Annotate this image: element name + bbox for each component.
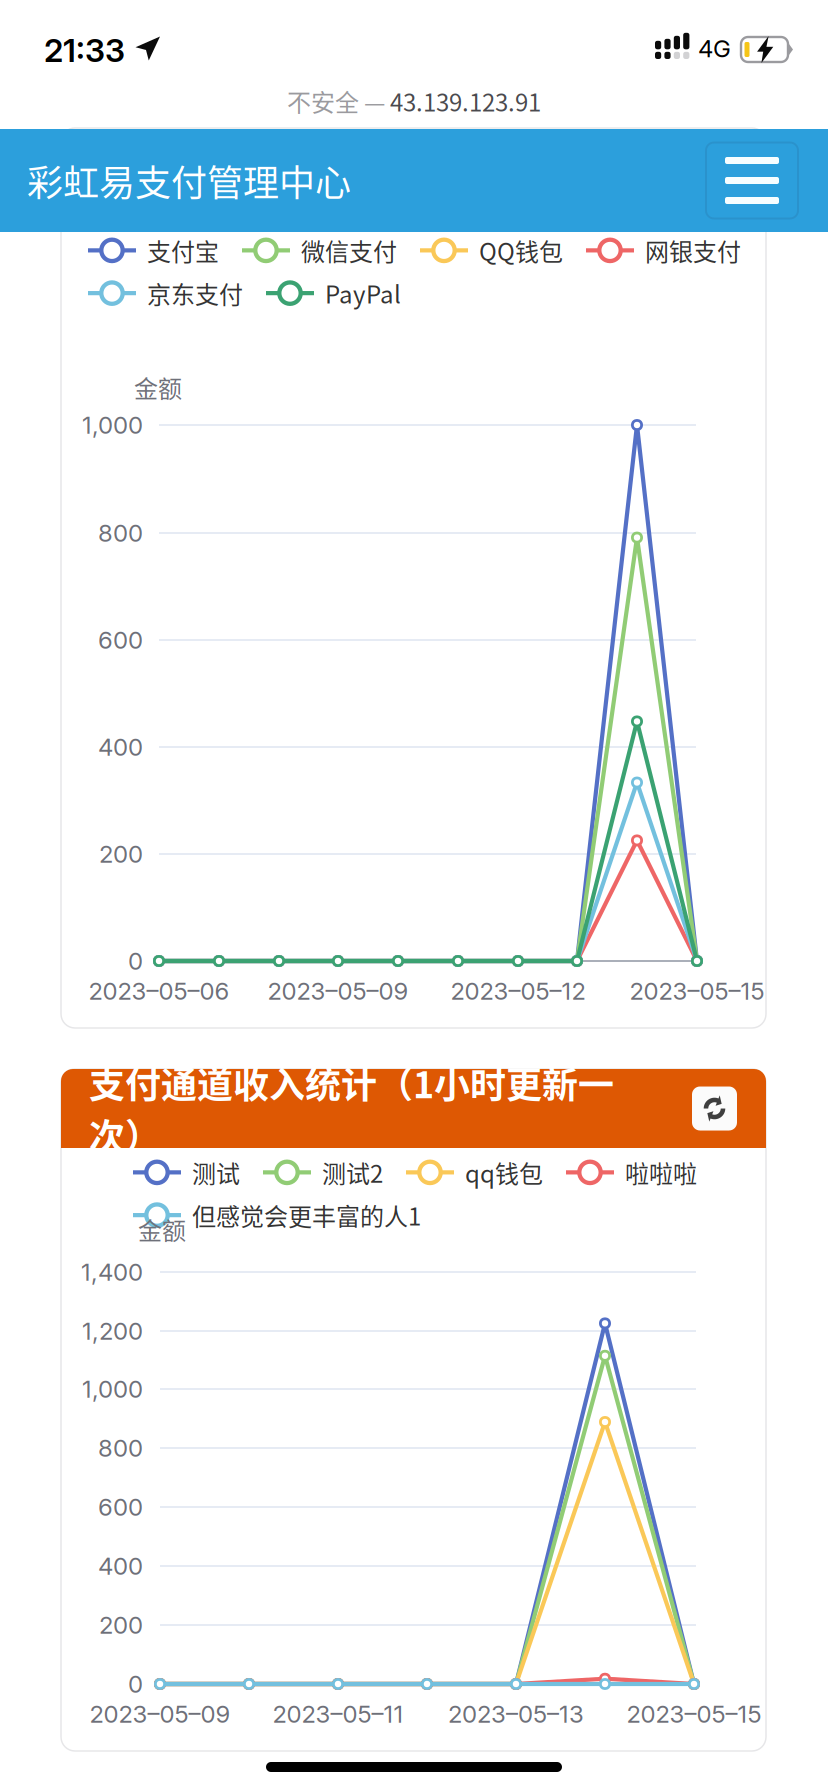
staticText: 但感觉会更丰富的人1	[192, 1198, 421, 1233]
staticText: 400	[98, 732, 143, 761]
staticText: QQ钱包	[479, 233, 563, 268]
staticText: 1,200	[82, 1316, 143, 1345]
button[interactable]: qq钱包	[405, 1155, 543, 1190]
staticText: 0	[128, 1669, 143, 1698]
staticText: 1,400	[81, 1257, 143, 1286]
staticText: 2023–05–09	[89, 1699, 230, 1728]
staticText: 43.139.123.91	[390, 84, 541, 118]
staticText: 金额	[138, 1212, 186, 1247]
staticText: 21:33	[44, 31, 125, 70]
staticText: 京东支付	[147, 276, 243, 311]
staticText: 600	[98, 1492, 143, 1521]
button[interactable]: 啦啦啦	[565, 1155, 697, 1190]
button[interactable]: 微信支付	[241, 233, 397, 268]
staticText: 2023–05–13	[448, 1699, 584, 1728]
staticText: —	[364, 84, 390, 118]
staticText: 0	[128, 946, 143, 975]
staticText: 金额	[134, 370, 182, 405]
staticText: 1,000	[82, 410, 143, 439]
staticText: 支付通道收入统计（1小时更新一次）	[89, 1056, 614, 1161]
staticText: 2023–05–15	[626, 1699, 761, 1728]
button[interactable]: 但感觉会更丰富的人1	[132, 1198, 421, 1233]
staticText: 800	[98, 518, 143, 547]
button[interactable]: Refresh	[692, 1086, 737, 1130]
staticText: 1,000	[82, 1374, 143, 1403]
staticText: 4G	[698, 34, 731, 63]
staticText: 测试	[192, 1155, 240, 1190]
button[interactable]: 京东支付	[87, 276, 243, 311]
staticText: 600	[98, 625, 143, 654]
button[interactable]: 测试2	[262, 1155, 383, 1190]
staticText: 啦啦啦	[625, 1155, 697, 1190]
staticText: 支付宝	[147, 233, 219, 268]
staticText: PayPal	[325, 276, 401, 311]
staticText: 400	[98, 1551, 143, 1580]
staticText: 200	[99, 839, 143, 868]
staticText: 2023–05–06	[88, 976, 229, 1005]
staticText: 不安全	[287, 84, 364, 118]
button[interactable]: QQ钱包	[419, 233, 563, 268]
staticText: 测试2	[322, 1155, 383, 1190]
staticText: 200	[99, 1610, 143, 1639]
button[interactable]: 支付宝	[87, 233, 219, 268]
button[interactable]: 网银支付	[585, 233, 741, 268]
staticText: qq钱包	[465, 1155, 543, 1190]
button[interactable]: 测试	[132, 1155, 240, 1190]
button[interactable]: PayPal	[265, 276, 401, 311]
staticText: 微信支付	[301, 233, 397, 268]
staticText: 彩虹易支付管理中心	[27, 154, 351, 206]
staticText: 800	[98, 1433, 143, 1462]
staticText: 2023–05–15	[629, 976, 764, 1005]
staticText: 2023–05–11	[272, 1699, 403, 1728]
staticText: 网银支付	[645, 233, 741, 268]
staticText: 2023–05–09	[267, 976, 408, 1005]
staticText: 2023–05–12	[450, 976, 585, 1005]
button[interactable]: Menu	[706, 142, 798, 218]
